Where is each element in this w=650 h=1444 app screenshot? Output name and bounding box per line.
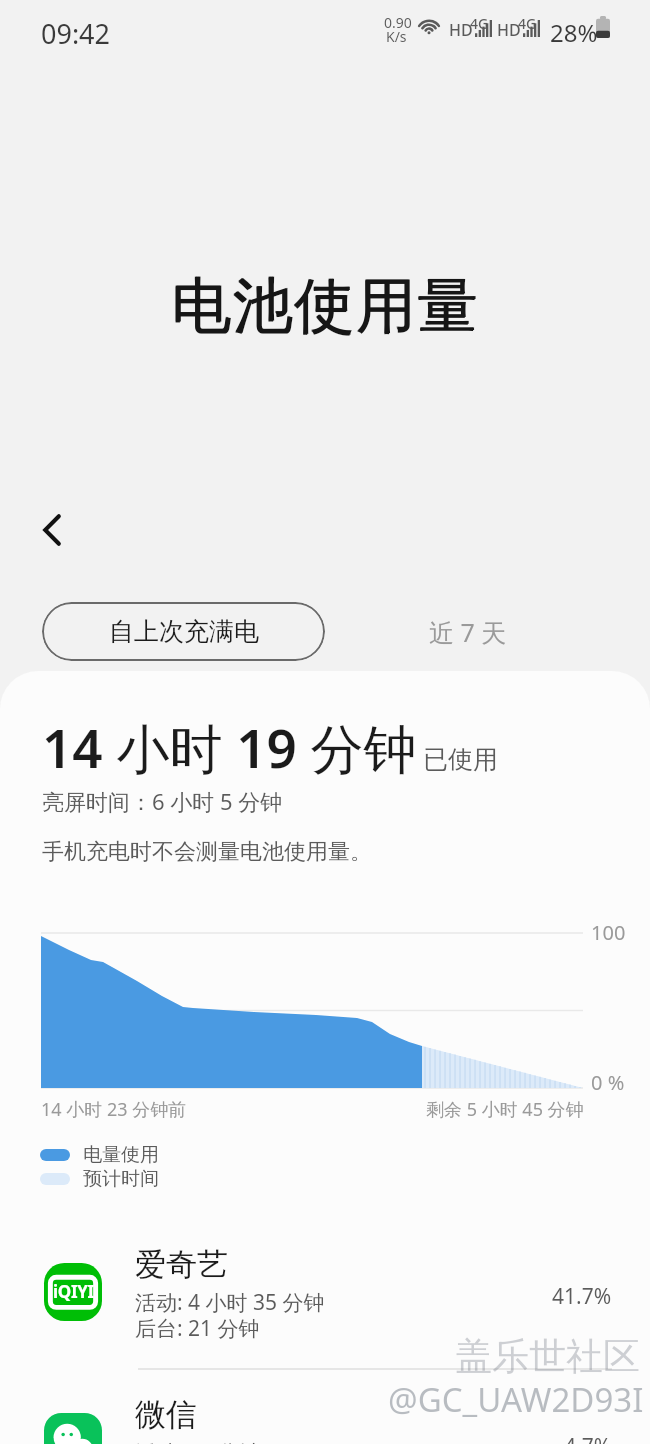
staticText: 预计时间 xyxy=(83,1167,159,1191)
staticText: 100 xyxy=(591,919,626,946)
staticText: 4G xyxy=(470,14,489,33)
staticText: 电池使用量 xyxy=(171,268,479,344)
staticText: 电量使用 xyxy=(83,1143,159,1167)
staticText: 自上次充满电 xyxy=(109,616,259,647)
staticText: 电池使用量 xyxy=(172,268,480,344)
staticText: 09:42 xyxy=(41,15,111,52)
staticText: 后台: 21 分钟 xyxy=(135,1314,260,1343)
staticText: HD xyxy=(497,19,521,41)
staticText: 盖乐世社区 xyxy=(455,1333,640,1380)
staticText: 剩余 5 小时 45 分钟 xyxy=(426,1097,584,1122)
staticText: 近 7 天 xyxy=(429,615,507,649)
staticText: 活动: 4 小时 35 分钟 xyxy=(135,1288,325,1317)
staticText: 电池使用量 xyxy=(171,269,479,345)
staticText: 14 小时 19 分钟 xyxy=(42,711,417,783)
button[interactable]: 近 7 天 xyxy=(380,602,556,661)
staticText: 4.7% xyxy=(564,1432,612,1444)
staticText: 手机充电时不会测量电池使用量。 xyxy=(42,838,372,866)
staticText: 4G xyxy=(518,14,537,33)
button[interactable]: Back xyxy=(23,502,79,558)
staticText: iQIYI xyxy=(53,1280,94,1303)
staticText: @GC_UAW2D93I xyxy=(388,1377,644,1422)
staticText: 0.90 xyxy=(384,13,412,32)
button[interactable]: iQIYI xyxy=(0,1263,650,1321)
staticText: HD xyxy=(449,19,473,41)
staticText: 14 小时 23 分钟前 xyxy=(41,1097,187,1122)
button[interactable]: 自上次充满电 xyxy=(42,602,325,661)
staticText: 28% xyxy=(550,16,598,49)
staticText: 活动: 28 分钟 xyxy=(135,1438,260,1444)
staticText: 41.7% xyxy=(552,1282,612,1311)
staticText: 0 % xyxy=(591,1069,625,1096)
staticText: K/s xyxy=(386,27,407,46)
staticText: 亮屏时间：6 小时 5 分钟 xyxy=(42,786,283,816)
staticText: 已使用 xyxy=(423,744,498,775)
button[interactable]: 微信 xyxy=(0,1413,650,1444)
staticText: 微信 xyxy=(135,1395,197,1434)
staticText: 爱奇艺 xyxy=(135,1245,228,1284)
